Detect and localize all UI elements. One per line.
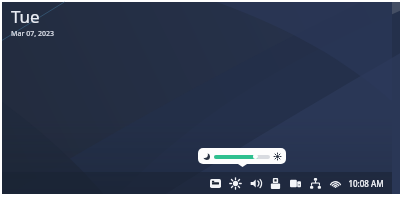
staticText: Mar 07, 2023 xyxy=(11,29,54,39)
button[interactable]: USB storage xyxy=(265,173,285,193)
staticText: Tue xyxy=(11,5,40,28)
button[interactable]: Tue xyxy=(9,4,56,40)
button[interactable]: Apps xyxy=(285,173,305,193)
button[interactable]: Volume xyxy=(245,173,265,193)
staticText: 10:08 AM xyxy=(348,178,384,189)
button[interactable] xyxy=(198,148,286,164)
button[interactable]: Display xyxy=(205,173,225,193)
button[interactable]: Brightness xyxy=(225,173,245,193)
button[interactable]: Wi-Fi xyxy=(325,173,345,193)
button[interactable]: Network xyxy=(305,173,325,193)
button[interactable]: 10:08 AM xyxy=(345,175,387,192)
